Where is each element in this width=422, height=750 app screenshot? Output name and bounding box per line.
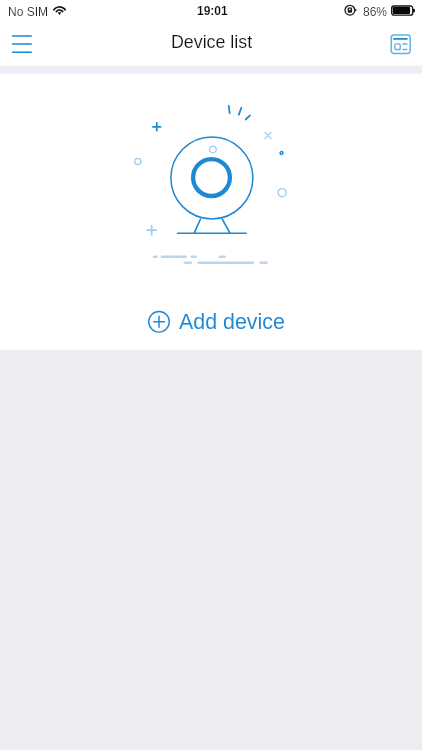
button[interactable]: Menu xyxy=(0,24,44,64)
button[interactable]: News xyxy=(384,29,416,61)
staticText: Device list xyxy=(171,32,253,52)
staticText: 86% xyxy=(363,5,388,18)
staticText: 19:01 xyxy=(197,4,228,17)
button[interactable]: Add device xyxy=(146,305,285,335)
staticText: No SIM xyxy=(8,5,49,18)
staticText: Add device xyxy=(179,310,285,334)
